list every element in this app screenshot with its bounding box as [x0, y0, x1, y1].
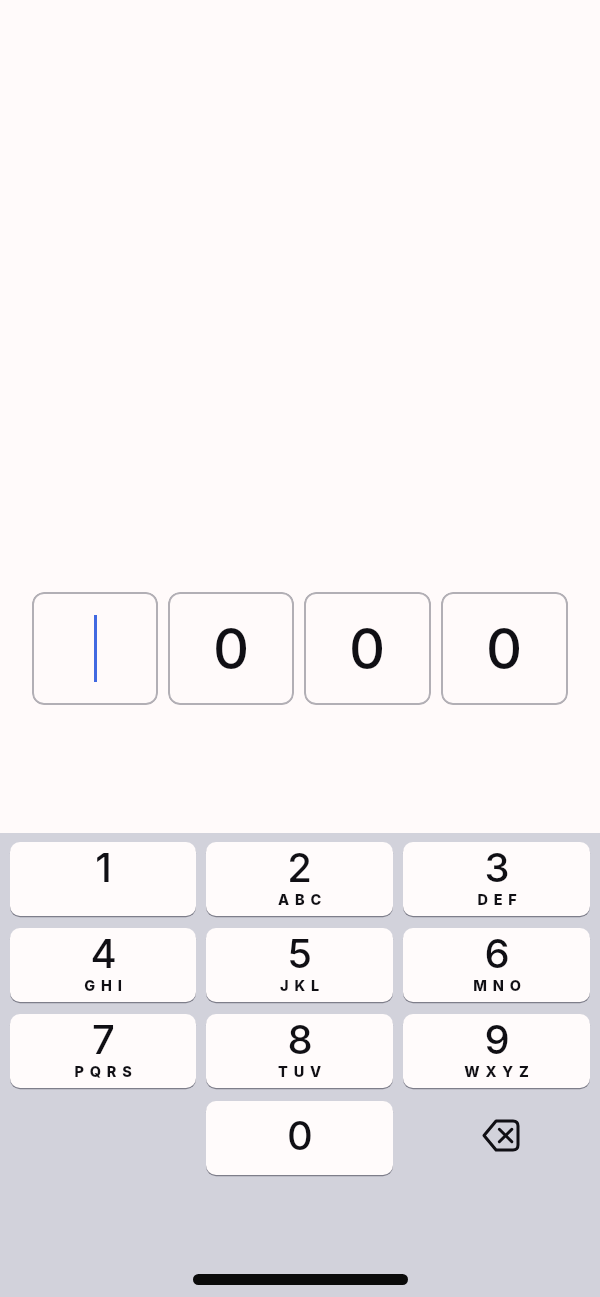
staticText: 3: [484, 843, 510, 891]
staticText: 0: [349, 615, 386, 683]
staticText: TUV: [278, 1063, 327, 1081]
button[interactable]: 0: [168, 592, 294, 705]
button[interactable]: 2: [206, 842, 393, 916]
staticText: JKL: [280, 977, 325, 995]
staticText: 1: [95, 843, 112, 891]
button[interactable]: 3: [403, 842, 590, 916]
staticText: 2: [287, 843, 312, 891]
button[interactable]: 4: [10, 928, 196, 1002]
staticText: 8: [287, 1015, 313, 1063]
staticText: ABC: [278, 891, 327, 909]
staticText: 5: [287, 929, 312, 977]
staticText: 0: [486, 615, 523, 683]
button[interactable]: 8: [206, 1014, 393, 1088]
button[interactable]: 7: [10, 1014, 196, 1088]
button[interactable]: 0: [206, 1101, 393, 1175]
button[interactable]: 0: [441, 592, 568, 705]
button[interactable]: [32, 592, 158, 705]
staticText: MNO: [473, 977, 527, 995]
staticText: 7: [92, 1015, 115, 1063]
button[interactable]: 5: [206, 928, 393, 1002]
staticText: 0: [287, 1111, 313, 1159]
staticText: WXYZ: [464, 1063, 535, 1081]
staticText: 0: [213, 615, 250, 683]
staticText: PQRS: [74, 1063, 138, 1081]
button[interactable]: Backspace: [403, 1101, 590, 1175]
staticText: DEF: [477, 891, 523, 909]
button[interactable]: 6: [403, 928, 590, 1002]
staticText: 9: [484, 1015, 510, 1063]
button[interactable]: 1: [10, 842, 196, 916]
button[interactable]: 0: [304, 592, 431, 705]
staticText: 4: [90, 929, 117, 977]
button[interactable]: 9: [403, 1014, 590, 1088]
staticText: GHI: [84, 977, 128, 995]
staticText: 6: [484, 929, 510, 977]
